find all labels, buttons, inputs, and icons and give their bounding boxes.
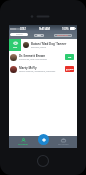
button[interactable]: Free <box>9 39 21 51</box>
staticText: My Friends <box>18 143 28 146</box>
staticText: personal, friend <box>31 46 46 49</box>
button[interactable]: $4,200 <box>65 66 74 72</box>
staticText: Free <box>13 46 18 49</box>
staticText: Marty McFly <box>19 66 37 70</box>
button[interactable]: My Friends <box>9 136 37 148</box>
button[interactable]: Free <box>9 39 77 51</box>
button[interactable]: Dr. Emmett Brown <box>10 51 74 63</box>
staticText: My Account <box>58 143 69 146</box>
staticText: Disconnect <box>57 34 69 37</box>
staticText: Sports almanac, skateboard, DeLorean <box>19 70 56 73</box>
button[interactable]: Add <box>38 134 49 145</box>
button[interactable]: My Account <box>49 136 77 148</box>
staticText: Butani 'Mad Dog' Tanner <box>31 42 67 46</box>
staticText: Search <box>16 33 23 36</box>
button[interactable]: List <box>34 34 44 37</box>
staticText: 9:41 AM <box>39 27 50 31</box>
button[interactable]: Search <box>10 33 28 36</box>
staticText: Dr. Emmett Brown <box>19 54 46 58</box>
button[interactable]: Disconnect <box>54 34 72 37</box>
staticText: AT&T <box>20 27 27 31</box>
staticText: List <box>37 34 41 37</box>
staticText: 100% <box>62 27 69 31</box>
staticText: $4,200 <box>66 68 74 71</box>
button[interactable]: Marty McFly <box>10 63 74 75</box>
staticText: Physics lab, near Lyon Estates <box>19 58 47 61</box>
staticText: Go <box>68 56 72 59</box>
button[interactable]: Go <box>65 54 74 60</box>
